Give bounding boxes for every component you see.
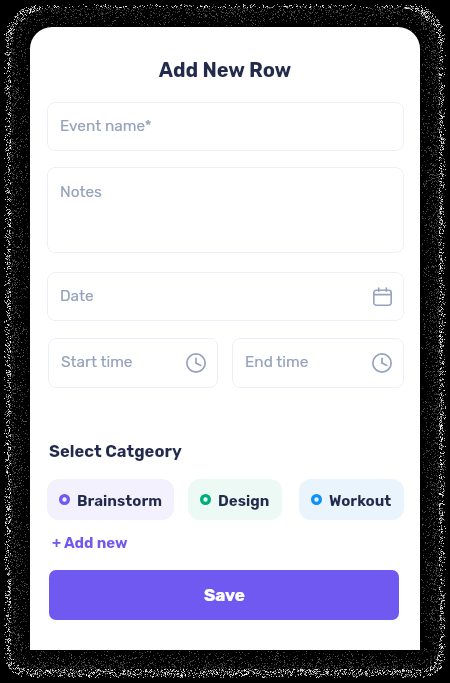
staticText: Start time [61, 353, 133, 371]
button[interactable]: End time [232, 338, 404, 388]
button[interactable]: Notes [47, 167, 404, 253]
button[interactable]: Pick time [372, 353, 392, 373]
staticText: Design [218, 492, 270, 510]
staticText: Date [60, 287, 94, 305]
staticText: Add New Row [30, 58, 420, 82]
button[interactable]: Save [49, 570, 399, 620]
staticText: + Add new [52, 534, 128, 552]
staticText: Event name* [60, 117, 152, 135]
button[interactable]: Start time [48, 338, 218, 388]
staticText: Notes [60, 183, 102, 201]
staticText: Select Catgeory [49, 442, 182, 462]
button[interactable]: Workout [299, 479, 404, 520]
button[interactable]: Design [188, 479, 282, 520]
button[interactable]: Event name* [47, 102, 404, 151]
staticText: Workout [329, 492, 392, 510]
staticText: Brainstorm [77, 492, 162, 510]
staticText: End time [245, 353, 309, 371]
button[interactable]: + Add new [52, 534, 128, 552]
button[interactable]: Date [47, 272, 404, 321]
staticText: Save [204, 585, 245, 605]
button[interactable]: Pick time [186, 353, 206, 373]
button[interactable]: Pick date [373, 287, 392, 306]
button[interactable]: Brainstorm [47, 479, 174, 520]
